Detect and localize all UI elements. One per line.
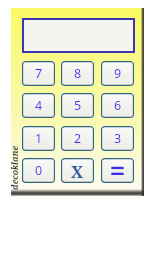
- staticText: 0: [35, 162, 43, 179]
- button[interactable]: X: [61, 158, 94, 183]
- button[interactable]: 1: [22, 126, 55, 151]
- button[interactable]: 9: [101, 61, 134, 86]
- button[interactable]: 5: [61, 93, 94, 118]
- staticText: 1: [35, 130, 43, 147]
- button[interactable]: Equals: [101, 158, 134, 183]
- staticText: 3: [114, 130, 122, 147]
- staticText: 9: [114, 65, 122, 82]
- button[interactable]: 4: [22, 93, 55, 118]
- button[interactable]: 6: [101, 93, 134, 118]
- staticText: 4: [35, 97, 43, 114]
- button[interactable]: 2: [61, 126, 94, 151]
- button[interactable]: 7: [22, 61, 55, 86]
- staticText: 7: [35, 65, 43, 82]
- staticText: 5: [74, 97, 82, 114]
- staticText: 2: [74, 130, 82, 147]
- button[interactable]: 3: [101, 126, 134, 151]
- staticText: decoklane: [9, 146, 21, 190]
- staticText: X: [71, 160, 84, 182]
- button[interactable]: 0: [22, 158, 55, 183]
- button[interactable]: 8: [61, 61, 94, 86]
- staticText: 6: [114, 97, 122, 114]
- staticText: 8: [74, 65, 82, 82]
